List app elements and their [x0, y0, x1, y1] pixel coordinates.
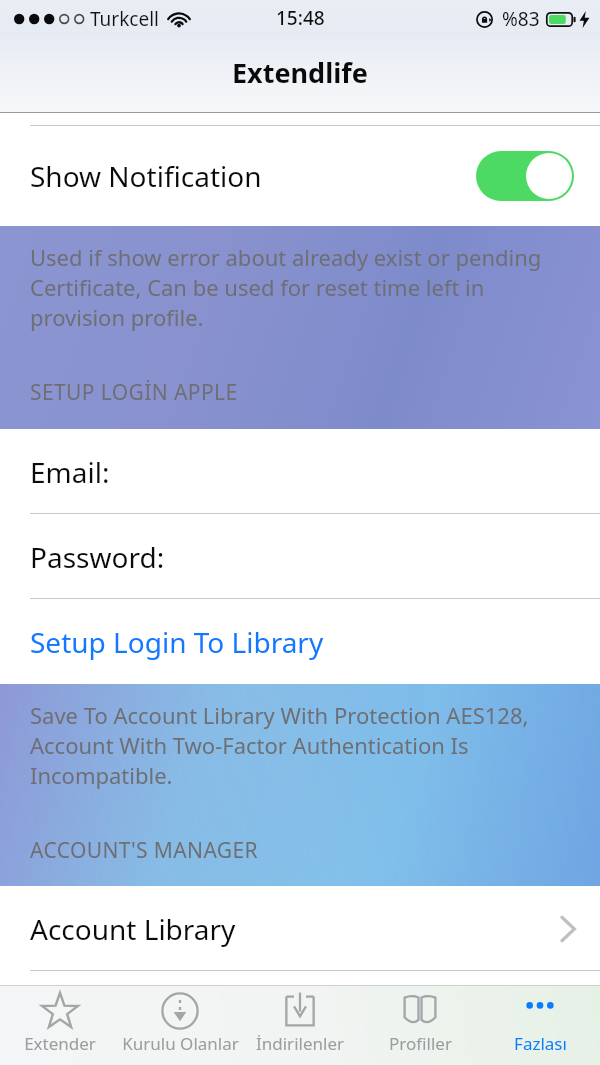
- button[interactable]: Extender: [0, 985, 120, 1065]
- staticText: ACCOUNT'S MANAGER: [30, 836, 259, 865]
- staticText: Account Library: [30, 910, 236, 948]
- staticText: Show Notification: [30, 157, 262, 195]
- staticText: Used if show error about already exist o…: [30, 242, 574, 332]
- staticText: Extendlife: [232, 54, 368, 91]
- button[interactable]: İndirilenler: [240, 985, 360, 1065]
- staticText: SETUP LOGİN APPLE: [30, 378, 238, 407]
- staticText: Fazlası: [514, 1032, 567, 1055]
- button[interactable]: Kurulu Olanlar: [120, 985, 240, 1065]
- staticText: Save To Account Library With Protection …: [30, 700, 574, 790]
- button[interactable]: Profiller: [360, 985, 480, 1065]
- button[interactable]: Password:: [0, 514, 600, 599]
- button[interactable]: Show Notification: [0, 126, 600, 226]
- button[interactable]: Fazlası: [480, 985, 600, 1065]
- staticText: 15:48: [276, 5, 325, 31]
- staticText: Email:: [30, 453, 110, 491]
- staticText: Setup Login To Library: [30, 623, 324, 661]
- button[interactable]: Show Notification toggle, on: [476, 151, 574, 201]
- staticText: Profiller: [389, 1032, 452, 1055]
- staticText: Turkcell: [90, 6, 159, 32]
- staticText: İndirilenler: [256, 1032, 344, 1055]
- staticText: Password:: [30, 538, 165, 576]
- button[interactable]: Account Library: [0, 886, 600, 971]
- button[interactable]: Email:: [0, 429, 600, 514]
- staticText: Kurulu Olanlar: [122, 1032, 239, 1055]
- staticText: %83: [502, 6, 540, 32]
- button[interactable]: Setup Login To Library: [0, 599, 600, 684]
- staticText: Extender: [24, 1032, 96, 1055]
